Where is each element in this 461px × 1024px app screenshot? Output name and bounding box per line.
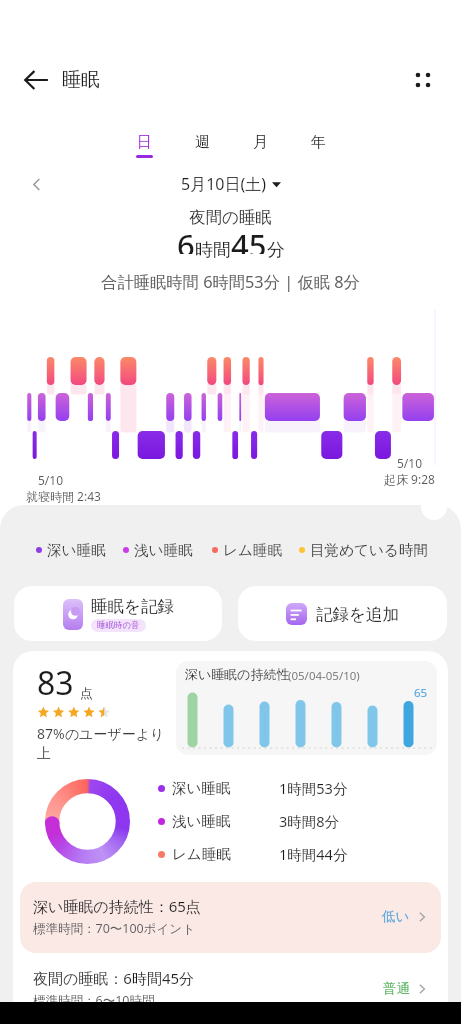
staticText: 標準時間：70〜100ポイント: [33, 920, 195, 937]
staticText: 標準時間：6〜10時間: [33, 992, 155, 1009]
staticText: 6: [177, 224, 195, 254]
staticText: 深い睡眠の持続性: [185, 666, 290, 682]
staticText: 5月10日(土): [181, 173, 267, 195]
staticText: 83: [37, 661, 74, 705]
button[interactable]: More options: [403, 60, 443, 100]
staticText: 週: [195, 133, 210, 152]
button[interactable]: 記録を追加: [238, 586, 447, 641]
staticText: 起床 9:28: [384, 471, 435, 487]
staticText: 5/10: [397, 455, 423, 471]
staticText: 睡眠: [62, 68, 100, 92]
staticText: 65: [414, 685, 428, 701]
staticText: 5/10: [38, 472, 64, 488]
staticText: 日: [137, 133, 152, 152]
button[interactable]: 日: [115, 133, 173, 158]
staticText: 月: [253, 133, 268, 152]
staticText: 1時間53分: [279, 778, 348, 798]
button[interactable]: Expand chart: [421, 494, 447, 520]
staticText: 年: [311, 133, 326, 152]
staticText: 1時間44分: [279, 844, 348, 864]
staticText: 時間: [195, 239, 231, 262]
staticText: 就寝時間 2:43: [26, 488, 101, 504]
button[interactable]: Previous day: [24, 172, 48, 196]
staticText: 夜間の睡眠: [0, 207, 461, 228]
staticText: 分: [267, 239, 285, 262]
staticText: 深い睡眠の持続性：65点: [33, 896, 201, 916]
staticText: 深い睡眠: [172, 779, 279, 797]
staticText: 浅い睡眠: [134, 541, 193, 559]
staticText: 記録を追加: [316, 604, 399, 625]
staticText: (05/04-05/10): [288, 668, 360, 684]
staticText: 低い: [382, 908, 410, 925]
staticText: 深い睡眠: [47, 541, 106, 559]
staticText: レム睡眠: [172, 845, 279, 863]
staticText: レム睡眠: [223, 541, 283, 559]
staticText: 睡眠時の音: [97, 620, 140, 631]
staticText: 睡眠を記録: [91, 596, 174, 617]
button[interactable]: Back: [16, 60, 56, 100]
staticText: 夜間の睡眠：6時間45分: [33, 968, 195, 988]
staticText: 点: [80, 685, 93, 701]
button[interactable]: 夜間の睡眠：6時間45分: [13, 953, 448, 1022]
button[interactable]: 週: [173, 133, 231, 158]
button[interactable]: 睡眠を記録: [14, 586, 222, 641]
staticText: 普通: [383, 980, 410, 997]
button[interactable]: 深い睡眠の持続性：65点: [20, 882, 441, 953]
staticText: 浅い睡眠: [172, 812, 279, 830]
staticText: 目覚めている時間: [310, 541, 429, 559]
staticText: 合計睡眠時間 6時間53分 | 仮眠 8分: [0, 271, 461, 293]
button[interactable]: 月: [231, 133, 289, 158]
staticText: 87%のユーザーより上: [37, 724, 176, 762]
staticText: 3時間8分: [279, 811, 340, 831]
button[interactable]: 年: [289, 133, 347, 158]
staticText: 45: [231, 224, 267, 254]
